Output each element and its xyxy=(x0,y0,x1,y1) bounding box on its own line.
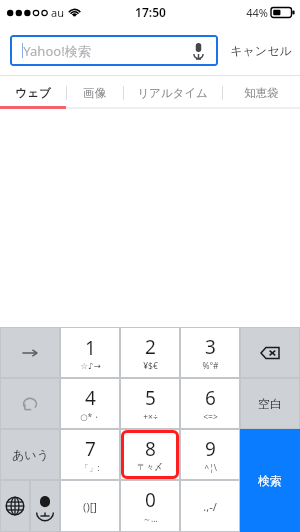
button[interactable]: 6 xyxy=(180,378,240,429)
staticText: ○*・ xyxy=(80,411,101,423)
staticText: ^¦\ xyxy=(204,462,217,474)
button[interactable]: 5 xyxy=(120,378,180,429)
button[interactable]: Undo xyxy=(0,378,60,429)
staticText: 5 xyxy=(145,385,156,411)
staticText: リアルタイム xyxy=(137,86,208,100)
button[interactable]: リアルタイム xyxy=(123,76,222,109)
staticText: ¥$€ xyxy=(143,360,158,372)
button[interactable]: 3 xyxy=(180,327,240,378)
staticText: 0 xyxy=(145,487,156,513)
staticText: 9 xyxy=(205,436,216,462)
button[interactable]: ()[] xyxy=(60,480,120,532)
button[interactable]: 4 xyxy=(60,378,120,429)
staticText: 3 xyxy=(205,334,216,360)
button[interactable]: Delete xyxy=(240,327,300,378)
staticText: %°# xyxy=(202,360,219,372)
button[interactable]: 7 xyxy=(60,429,120,480)
button[interactable]: Next xyxy=(0,327,60,378)
staticText: 検索 xyxy=(258,473,282,488)
button[interactable]: 検索 xyxy=(240,429,300,532)
staticText: +×÷ xyxy=(143,411,158,423)
staticText: Yahoo!検索 xyxy=(23,42,91,60)
staticText: 44% xyxy=(246,5,268,20)
staticText: 空白 xyxy=(258,396,282,411)
button[interactable]: あいう xyxy=(0,429,60,480)
staticText: ()[] xyxy=(83,499,97,514)
staticText: 画像 xyxy=(83,86,106,100)
staticText: ウェブ xyxy=(15,86,51,100)
staticText: 1 xyxy=(85,335,96,361)
button[interactable]: ウェブ xyxy=(0,76,66,109)
staticText: 7 xyxy=(85,436,96,462)
button[interactable]: Yahoo!検索 xyxy=(10,35,218,66)
staticText: 〒々〆 xyxy=(137,462,163,473)
button[interactable]: 空白 xyxy=(240,378,300,429)
staticText: 6 xyxy=(205,385,216,411)
staticText: 知恵袋 xyxy=(244,86,279,100)
button[interactable]: キャンセル xyxy=(230,24,292,76)
button[interactable]: Voice xyxy=(30,480,60,532)
staticText: au xyxy=(51,5,64,20)
button[interactable]: 1 xyxy=(60,327,120,378)
staticText: <=> xyxy=(203,411,218,423)
button[interactable]: 9 xyxy=(180,429,240,480)
staticText: キャンセル xyxy=(230,43,292,58)
staticText: 「」: xyxy=(80,462,100,474)
staticText: ☆♪→ xyxy=(80,361,101,371)
button[interactable]: .,-/ xyxy=(180,480,240,532)
staticText: 17:50 xyxy=(135,4,166,20)
other: Voice search xyxy=(193,43,204,59)
button[interactable]: 8 xyxy=(120,429,180,480)
staticText: .,-/ xyxy=(203,499,217,514)
button[interactable]: Globe xyxy=(0,480,30,532)
staticText: 4 xyxy=(85,385,96,411)
staticText: ～… xyxy=(142,513,158,525)
button[interactable]: 知恵袋 xyxy=(222,76,300,109)
button[interactable]: 画像 xyxy=(66,76,123,109)
button[interactable]: 2 xyxy=(120,327,180,378)
staticText: 2 xyxy=(145,334,156,360)
staticText: 8 xyxy=(145,436,156,462)
button[interactable]: 0 xyxy=(120,480,180,532)
staticText: あいう xyxy=(12,447,49,462)
